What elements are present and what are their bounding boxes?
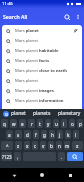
button[interactable]: z <box>15 141 22 150</box>
staticText: c <box>34 143 37 149</box>
button[interactable]: Mars planet close to earth <box>2 66 82 76</box>
staticText: Search All <box>3 13 28 20</box>
button[interactable]: d <box>24 130 31 139</box>
button[interactable]: v <box>40 141 46 150</box>
staticText: e <box>21 121 24 127</box>
staticText: , <box>17 154 19 160</box>
button[interactable]: Mars planet habitable <box>2 46 82 56</box>
button[interactable]: h <box>49 130 55 139</box>
staticText: Mars planet facts <box>15 58 82 64</box>
staticText: planetary <box>58 110 81 117</box>
staticText: o <box>71 121 74 127</box>
staticText: planet <box>11 110 26 117</box>
button[interactable]: Mars planet <box>2 36 82 46</box>
staticText: Mars planet information <box>15 98 82 104</box>
button[interactable]: e <box>19 119 26 128</box>
staticText: h <box>51 132 54 138</box>
button[interactable]: p <box>77 119 83 128</box>
staticText: v <box>42 143 45 149</box>
staticText: d <box>26 132 29 138</box>
button[interactable]: y <box>45 119 51 128</box>
button[interactable]: Mars planet information <box>2 96 82 106</box>
button[interactable]: s <box>15 130 22 139</box>
button[interactable]: Mars planet <box>2 76 82 86</box>
staticText: q <box>3 121 6 127</box>
staticText: w <box>12 121 16 127</box>
staticText: Mars planet <box>15 78 82 84</box>
staticText: p <box>79 121 82 127</box>
button[interactable]: f <box>33 130 39 139</box>
button[interactable]: l <box>73 130 79 139</box>
button[interactable]: More options <box>74 13 82 21</box>
staticText: m <box>65 143 70 149</box>
staticText: Mars planet habitable <box>15 48 82 54</box>
button[interactable]: x <box>72 141 83 150</box>
button[interactable]: Search <box>67 152 83 161</box>
staticText: Mars planet images <box>15 88 82 94</box>
button[interactable]: Mars planet <box>2 26 82 36</box>
button[interactable]: b <box>48 141 54 150</box>
button[interactable]: q <box>1 119 8 128</box>
button[interactable]: m <box>64 141 70 150</box>
staticText: f <box>35 132 37 138</box>
staticText: Mars planet <box>15 28 73 34</box>
staticText: planets <box>33 110 51 117</box>
button[interactable]: w <box>10 119 17 128</box>
button[interactable]: t <box>37 119 43 128</box>
staticText: l <box>75 132 77 138</box>
staticText: j <box>59 132 61 138</box>
staticText: g <box>43 132 46 138</box>
button[interactable]: Recents <box>56 168 84 182</box>
button[interactable]: g <box>41 130 47 139</box>
staticText: a <box>8 132 11 138</box>
staticText: 11:46 <box>2 1 13 7</box>
button[interactable]: n <box>56 141 62 150</box>
staticText: t <box>39 121 41 127</box>
staticText: z <box>17 143 20 149</box>
button[interactable]: Back <box>0 168 28 182</box>
staticText: r <box>31 121 33 127</box>
staticText: Mars planet <box>15 38 82 44</box>
staticText: ^ <box>6 143 9 149</box>
button[interactable]: a <box>6 130 13 139</box>
button[interactable]: x <box>24 141 30 150</box>
staticText: Mars planet close to earth <box>15 68 82 74</box>
staticText: u <box>55 121 58 127</box>
button[interactable]: Mars planet facts <box>2 56 82 66</box>
button[interactable]: ^ <box>1 141 13 150</box>
button[interactable]: k <box>65 130 71 139</box>
button[interactable]: Search <box>62 12 72 22</box>
staticText: i <box>63 121 65 127</box>
staticText: ?123 <box>2 154 12 160</box>
button[interactable]: j <box>57 130 63 139</box>
staticText: y <box>47 121 50 127</box>
staticText: k <box>67 132 70 138</box>
button[interactable]: o <box>69 119 75 128</box>
staticText: . <box>61 154 63 160</box>
button[interactable]: c <box>32 141 38 150</box>
staticText: G <box>5 112 8 117</box>
button[interactable]: i <box>61 119 67 128</box>
staticText: x <box>76 143 79 149</box>
button[interactable]: ?123 <box>1 152 12 161</box>
button[interactable]: Mars planet images <box>2 86 82 96</box>
button[interactable]: . <box>58 152 65 161</box>
button[interactable]: Home <box>28 168 56 182</box>
button[interactable]: , <box>14 152 21 161</box>
staticText: x <box>26 143 29 149</box>
staticText: s <box>17 132 20 138</box>
button[interactable]: u <box>53 119 59 128</box>
button[interactable]: r <box>28 119 35 128</box>
staticText: b <box>50 143 53 149</box>
staticText: n <box>58 143 61 149</box>
